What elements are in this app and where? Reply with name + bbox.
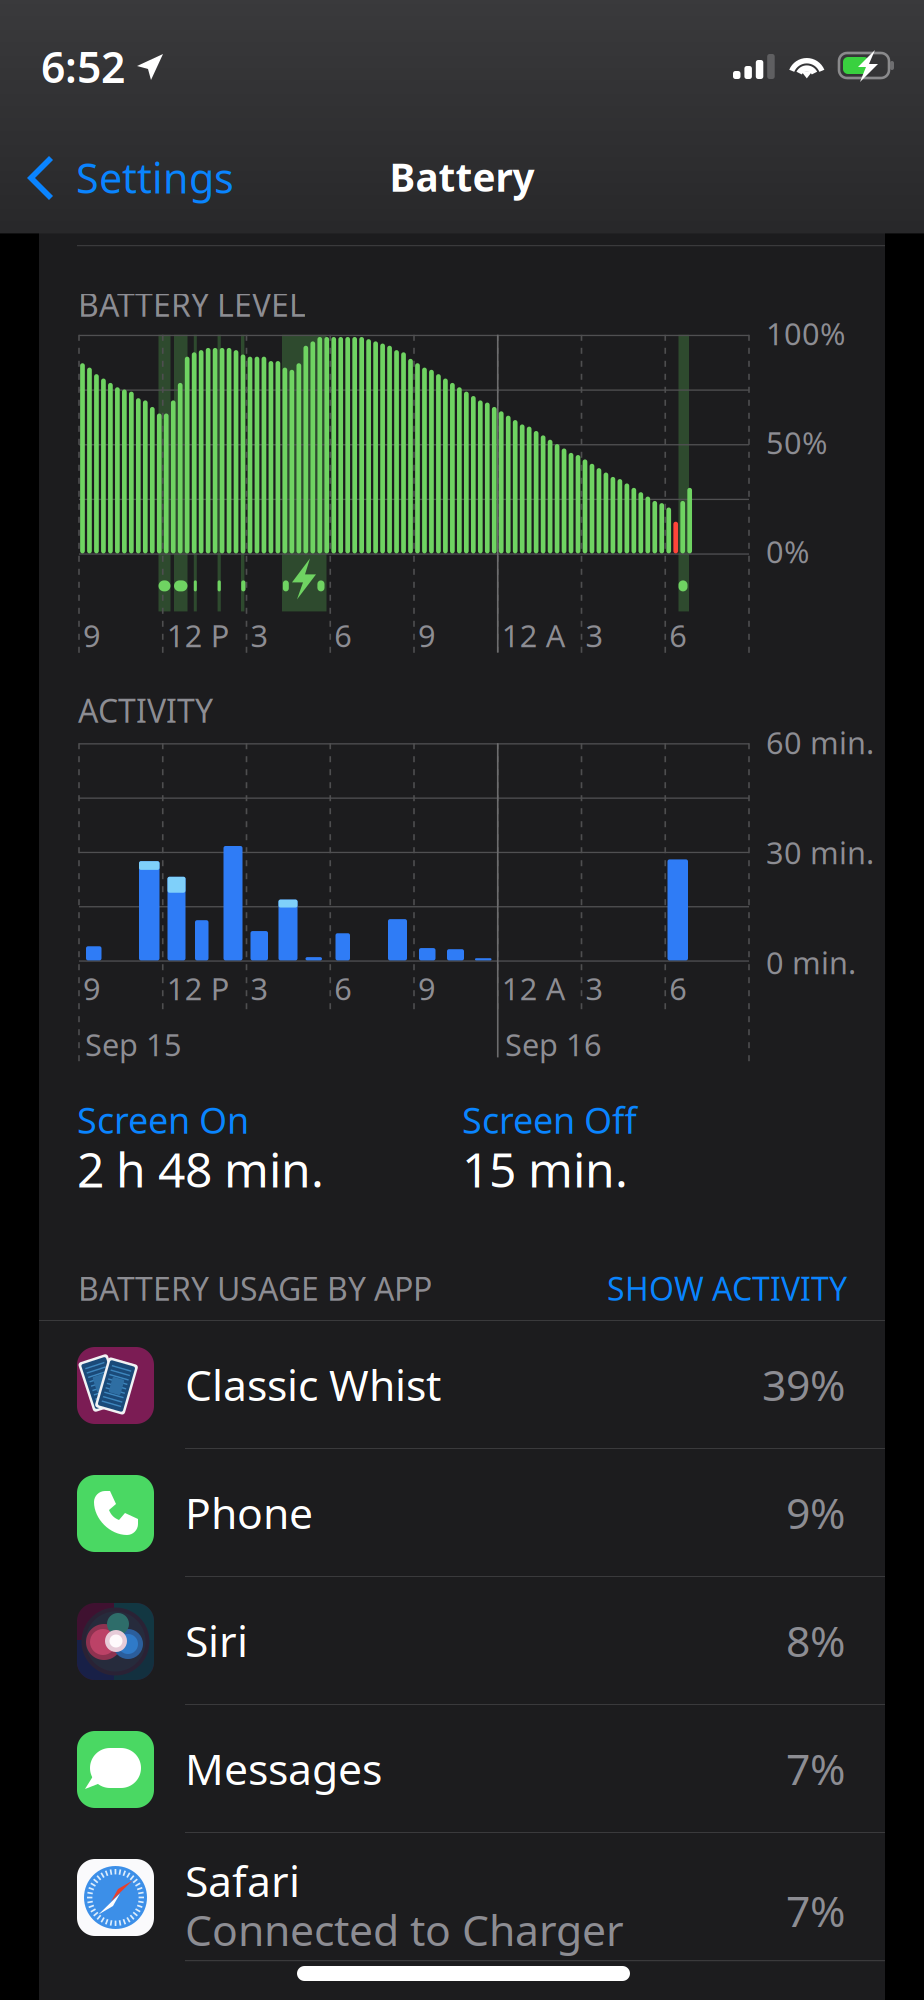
staticText: 100% xyxy=(766,313,845,354)
staticText: Safari xyxy=(185,1852,300,1909)
staticText: 50% xyxy=(766,422,827,463)
staticText: BATTERY LEVEL xyxy=(78,283,306,325)
staticText: 2 h 48 min. xyxy=(77,1137,324,1201)
staticText: Siri xyxy=(185,1612,248,1669)
staticText: Screen On xyxy=(77,1096,249,1144)
staticText: 7% xyxy=(786,1740,845,1797)
staticText: 7% xyxy=(786,1882,845,1939)
staticText: Settings xyxy=(76,150,234,205)
staticText: 12 A xyxy=(502,968,566,1009)
staticText: 8% xyxy=(786,1612,845,1669)
staticText: 6 xyxy=(334,615,352,656)
staticText: 0% xyxy=(766,531,809,572)
staticText: Battery xyxy=(389,151,534,202)
button[interactable]: Classic Whist xyxy=(39,1321,885,1449)
staticText: 3 xyxy=(250,615,268,656)
staticText: ACTIVITY xyxy=(78,689,213,731)
staticText: 12 P xyxy=(167,968,230,1009)
staticText: Sep 16 xyxy=(505,1024,602,1065)
button[interactable]: Screen Off xyxy=(462,1096,812,1196)
staticText: 9% xyxy=(786,1484,845,1541)
staticText: 39% xyxy=(762,1356,845,1413)
button[interactable]: Messages xyxy=(39,1705,885,1833)
staticText: 3 xyxy=(585,968,603,1009)
staticText: Connected to Charger xyxy=(185,1901,624,1958)
staticText: 12 P xyxy=(167,615,230,656)
button[interactable]: Phone xyxy=(39,1449,885,1577)
staticText: 6:52 xyxy=(41,38,125,95)
button[interactable]: Siri xyxy=(39,1577,885,1705)
staticText: 60 min. xyxy=(766,722,874,763)
staticText: 9 xyxy=(83,615,101,656)
staticText: Phone xyxy=(185,1484,313,1541)
staticText: 6 xyxy=(669,615,687,656)
staticText: Sep 15 xyxy=(85,1024,182,1065)
button[interactable]: SHOW ACTIVITY xyxy=(597,1267,847,1309)
button[interactable]: Screen On xyxy=(77,1096,427,1196)
staticText: 15 min. xyxy=(462,1137,628,1201)
staticText: 6 xyxy=(669,968,687,1009)
staticText: BATTERY USAGE BY APP xyxy=(78,1267,432,1309)
staticText: 30 min. xyxy=(766,832,874,873)
staticText: 0 min. xyxy=(766,942,856,983)
button[interactable]: Safari xyxy=(39,1833,885,1961)
staticText: Messages xyxy=(185,1740,382,1797)
staticText: Screen Off xyxy=(462,1096,637,1144)
staticText: 9 xyxy=(418,615,436,656)
staticText: Classic Whist xyxy=(185,1356,441,1413)
staticText: SHOW ACTIVITY xyxy=(607,1267,847,1309)
staticText: 6 xyxy=(334,968,352,1009)
staticText: 3 xyxy=(250,968,268,1009)
staticText: 9 xyxy=(83,968,101,1009)
staticText: 3 xyxy=(585,615,603,656)
staticText: 9 xyxy=(418,968,436,1009)
staticText: 12 A xyxy=(502,615,566,656)
button[interactable]: Settings xyxy=(23,142,253,214)
